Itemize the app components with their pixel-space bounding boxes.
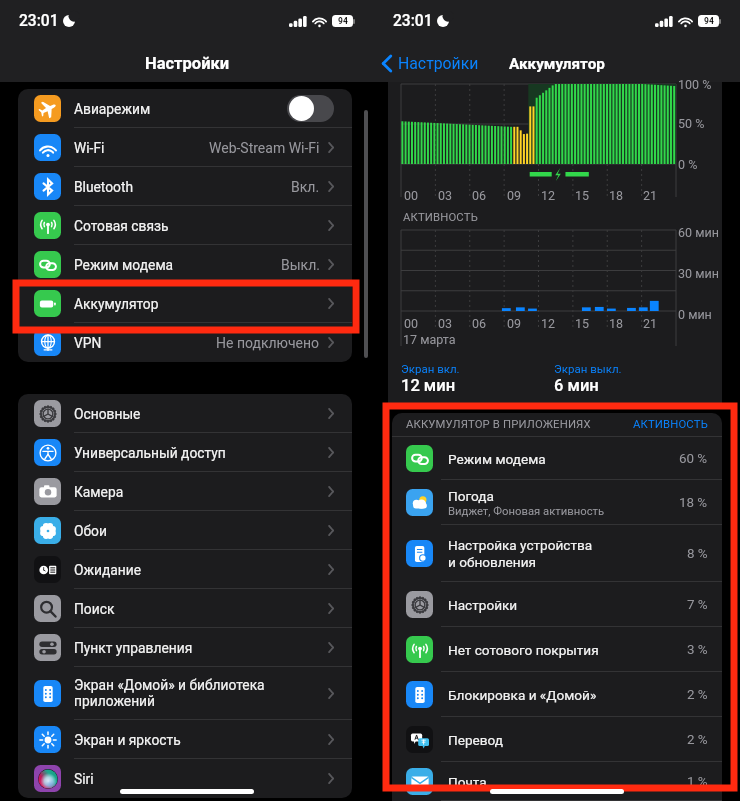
staticText: 17 марта — [403, 332, 456, 347]
staticText: 50 % — [678, 116, 705, 131]
staticText: 18 — [609, 316, 624, 331]
button[interactable]: Обои — [18, 511, 352, 550]
staticText: Авиарежим — [74, 101, 287, 117]
staticText: 03 — [438, 316, 453, 331]
staticText: 18 — [609, 188, 624, 203]
button[interactable]: Режим модема — [18, 245, 352, 284]
button[interactable]: Почта — [392, 762, 722, 801]
staticText: 23:01 — [393, 12, 433, 30]
staticText: 15 — [575, 188, 590, 203]
staticText: 06 — [472, 188, 487, 203]
button[interactable]: Нет сотового покрытия — [392, 627, 722, 672]
staticText: Ожидание — [74, 562, 328, 578]
staticText: 3 % — [687, 642, 708, 658]
staticText: VPN — [74, 335, 216, 351]
staticText: Настройки — [145, 54, 230, 73]
staticText: Bluetooth — [74, 179, 291, 195]
staticText: 15 — [575, 316, 590, 331]
staticText: Режим модема — [448, 451, 546, 467]
staticText: 60 мин — [678, 225, 719, 240]
staticText: 94 — [338, 16, 348, 26]
button[interactable]: Настройки — [392, 582, 722, 627]
staticText: 100 % — [678, 77, 712, 92]
staticText: Перевод — [448, 732, 503, 748]
staticText: 2 % — [687, 732, 708, 748]
staticText: 60 % — [679, 451, 708, 467]
staticText: 00 — [404, 188, 419, 203]
staticText: Экран вкл. — [401, 362, 460, 375]
button[interactable]: Экран «Домой» и библиотека приложений — [18, 667, 352, 720]
staticText: Универсальный доступ — [74, 445, 328, 461]
staticText: Аккумулятор — [509, 55, 605, 73]
button[interactable]: Погода — [392, 480, 722, 525]
staticText: Web-Stream Wi-Fi — [209, 140, 320, 156]
staticText: Выкл. — [281, 257, 320, 273]
staticText: 0 % — [678, 157, 698, 172]
button[interactable]: Сотовая связь — [18, 206, 352, 245]
staticText: Пункт управления — [74, 640, 328, 656]
button[interactable]: Перевод — [392, 717, 722, 762]
staticText: 30 мин — [678, 266, 719, 281]
staticText: Экран «Домой» и библиотека приложений — [74, 677, 328, 710]
staticText: 12 мин — [401, 376, 456, 395]
staticText: Настройка устройства и обновления — [448, 537, 593, 570]
staticText: Блокировка и «Домой» — [448, 687, 597, 703]
staticText: 12 — [541, 316, 556, 331]
button[interactable]: Камера — [18, 472, 352, 511]
staticText: АКТИВНОСТЬ — [403, 211, 478, 224]
staticText: Поиск — [74, 601, 328, 617]
staticText: Погода — [448, 488, 494, 504]
button[interactable]: Авиарежим — [18, 89, 352, 128]
button[interactable]: Аккумулятор — [18, 284, 352, 323]
button[interactable]: Airplane mode toggle — [287, 95, 334, 122]
staticText: Обои — [74, 523, 328, 539]
staticText: Аккумулятор — [74, 296, 328, 312]
staticText: 23:01 — [19, 12, 59, 30]
staticText: Siri — [74, 771, 328, 787]
staticText: Камера — [74, 484, 328, 500]
staticText: 00 — [404, 316, 419, 331]
staticText: АККУМУЛЯТОР В ПРИЛОЖЕНИЯХ — [406, 418, 633, 431]
button[interactable]: VPN — [18, 323, 352, 362]
staticText: 03 — [438, 188, 453, 203]
staticText: Экран и яркость — [74, 732, 328, 748]
button[interactable]: Настройка устройства и обновления — [392, 525, 722, 582]
staticText: Wi-Fi — [74, 140, 209, 156]
staticText: 94 — [704, 16, 714, 26]
staticText: 09 — [507, 188, 522, 203]
button[interactable]: Wi-Fi — [18, 128, 352, 167]
staticText: Сотовая связь — [74, 218, 328, 234]
staticText: 8 % — [687, 546, 708, 562]
button[interactable]: Режим модема — [392, 437, 722, 480]
staticText: Настройки — [398, 54, 479, 73]
staticText: 09 — [507, 316, 522, 331]
staticText: Нет сотового покрытия — [448, 642, 599, 658]
button[interactable]: Bluetooth — [18, 167, 352, 206]
staticText: Режим модема — [74, 257, 281, 273]
button[interactable]: Siri — [18, 759, 352, 798]
button[interactable]: Основные — [18, 394, 352, 433]
staticText: Экран выкл. — [554, 362, 622, 375]
button[interactable]: Ожидание — [18, 550, 352, 589]
staticText: 12 — [541, 188, 556, 203]
button[interactable]: Универсальный доступ — [18, 433, 352, 472]
button[interactable]: Пункт управления — [18, 628, 352, 667]
staticText: 18 % — [679, 495, 708, 511]
button[interactable]: Поиск — [18, 589, 352, 628]
staticText: Не подключено — [216, 335, 320, 351]
staticText: 2 % — [687, 687, 708, 703]
staticText: Настройки — [448, 597, 518, 613]
staticText: Вкл. — [291, 179, 320, 195]
button[interactable]: Настройки — [380, 54, 481, 73]
button[interactable]: Блокировка и «Домой» — [392, 672, 722, 717]
staticText: 21 — [643, 188, 658, 203]
staticText: 1 % — [687, 774, 708, 790]
staticText: Основные — [74, 406, 328, 422]
staticText: 7 % — [687, 597, 708, 613]
button[interactable]: АКТИВНОСТЬ — [633, 418, 708, 431]
staticText: 21 — [643, 316, 658, 331]
staticText: 0 мин — [678, 307, 712, 322]
button[interactable]: Экран и яркость — [18, 720, 352, 759]
staticText: 6 мин — [554, 376, 599, 395]
staticText: Виджет, Фоновая активность — [448, 505, 605, 518]
